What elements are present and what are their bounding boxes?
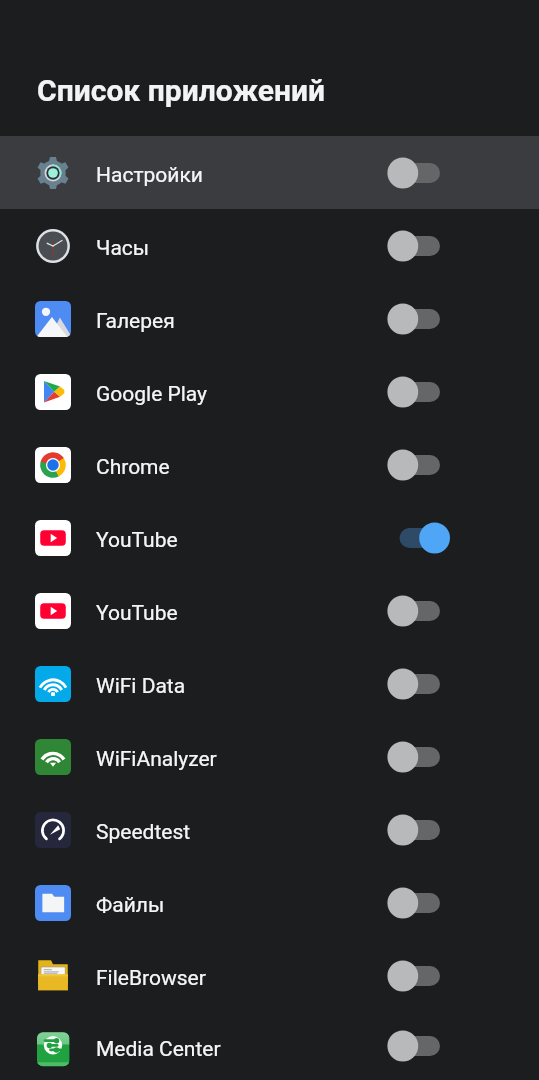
button[interactable]: Toggle Google Play — [387, 372, 450, 412]
button[interactable]: Chrome — [0, 428, 539, 501]
staticText: FileBrowser — [96, 966, 387, 991]
button[interactable]: Speedtest — [0, 793, 539, 866]
button[interactable]: Toggle Часы — [387, 226, 450, 266]
staticText: Chrome — [96, 455, 387, 480]
staticText: Файлы — [96, 893, 387, 918]
button[interactable]: Галерея — [0, 282, 539, 355]
button[interactable]: WiFi Data — [0, 647, 539, 720]
button[interactable]: FileBrowser — [0, 939, 539, 1012]
button[interactable]: Toggle FileBrowser — [387, 956, 450, 996]
staticText: Google Play — [96, 382, 387, 407]
staticText: Speedtest — [96, 820, 387, 845]
button[interactable]: Toggle Speedtest — [387, 810, 450, 850]
button[interactable]: Часы — [0, 209, 539, 282]
button[interactable]: Toggle YouTube — [387, 518, 450, 558]
button[interactable]: Файлы — [0, 866, 539, 939]
staticText: Список приложений — [37, 73, 326, 108]
button[interactable]: YouTube — [0, 501, 539, 574]
button[interactable]: Google Play — [0, 355, 539, 428]
button[interactable]: Toggle WiFi Data — [387, 664, 450, 704]
button[interactable]: Toggle Файлы — [387, 883, 450, 923]
staticText: YouTube — [96, 601, 387, 626]
button[interactable]: WiFiAnalyzer — [0, 720, 539, 793]
staticText: Часы — [96, 236, 387, 261]
button[interactable]: Toggle Chrome — [387, 445, 450, 485]
staticText: Настройки — [96, 163, 387, 188]
button[interactable]: Настройки — [0, 136, 539, 209]
staticText: Галерея — [96, 309, 387, 334]
button[interactable]: Toggle Галерея — [387, 299, 450, 339]
staticText: WiFiAnalyzer — [96, 747, 387, 772]
button[interactable]: Toggle Media Center — [387, 1026, 450, 1066]
button[interactable]: Toggle Настройки — [387, 153, 450, 193]
staticText: Media Center — [96, 1037, 387, 1062]
staticText: WiFi Data — [96, 674, 387, 699]
button[interactable]: Media Center — [0, 1012, 539, 1080]
button[interactable]: YouTube — [0, 574, 539, 647]
staticText: YouTube — [96, 528, 387, 553]
button[interactable]: Toggle WiFiAnalyzer — [387, 737, 450, 777]
button[interactable]: Toggle YouTube — [387, 591, 450, 631]
